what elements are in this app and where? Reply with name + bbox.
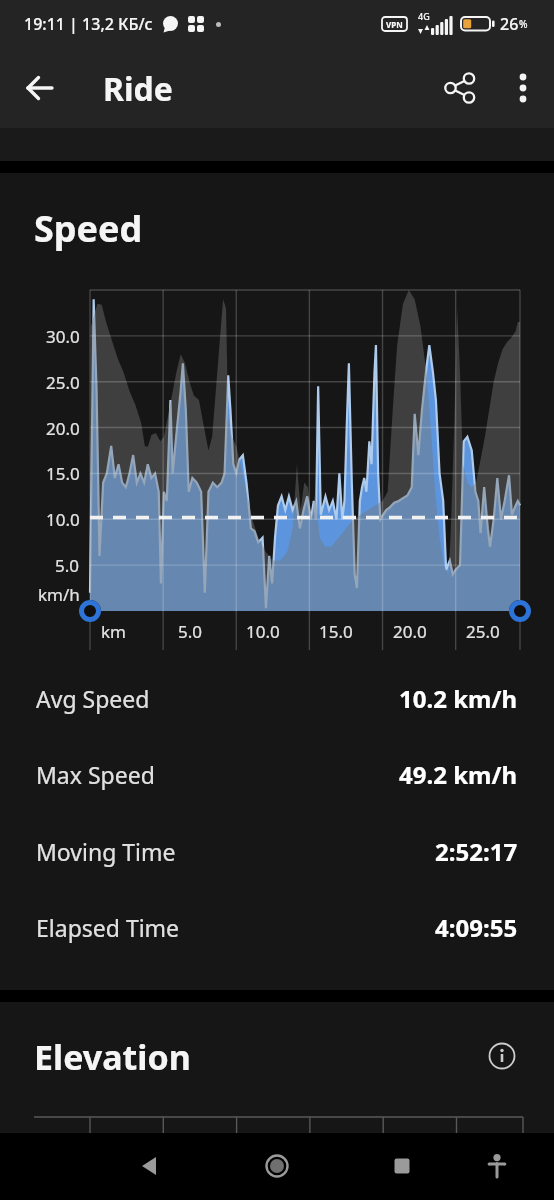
staticText: Moving Time [36,836,176,867]
button[interactable] [437,65,483,111]
staticText: 2:52:17 [435,835,518,868]
staticText: 4:09:55 [435,911,518,944]
staticText: Elapsed Time [36,912,180,943]
button[interactable]: Elapsed Time [36,907,518,947]
staticText: km/h [38,583,80,606]
staticText: 25.0 [466,620,500,643]
button[interactable]: Max Speed [36,754,518,794]
staticText: Ride [103,67,173,111]
staticText: 10.2 km/h [399,682,518,715]
button[interactable]: Avg Speed [36,678,518,718]
staticText: 20.0 [46,417,80,440]
staticText: 15.0 [46,462,80,485]
button[interactable] [253,1142,301,1190]
button[interactable] [480,1034,524,1078]
button[interactable] [473,1142,521,1190]
staticText: 49.2 km/h [399,758,518,791]
staticText: 5.0 [178,620,203,643]
button[interactable] [126,1142,174,1190]
staticText: % [519,17,528,31]
staticText: 19:11 | 13,2 КБ/с [24,13,153,35]
staticText: Elevation [34,1034,191,1080]
staticText: 15.0 [319,620,353,643]
button[interactable] [16,64,64,112]
staticText: 10.0 [46,508,80,531]
staticText: Speed [34,204,143,253]
staticText: km [101,620,126,643]
staticText: 26 [500,13,519,35]
staticText: VPN [386,19,403,30]
button[interactable]: Moving Time [36,831,518,871]
staticText: 20.0 [393,620,427,643]
staticText: 30.0 [46,325,80,348]
button[interactable] [378,1142,426,1190]
staticText: Avg Speed [36,683,150,714]
staticText: 10.0 [246,620,280,643]
staticText: 25.0 [46,371,80,394]
staticText: 4G [418,10,430,22]
button[interactable] [500,65,546,111]
staticText: 5.0 [55,554,80,577]
staticText: Max Speed [36,759,155,790]
